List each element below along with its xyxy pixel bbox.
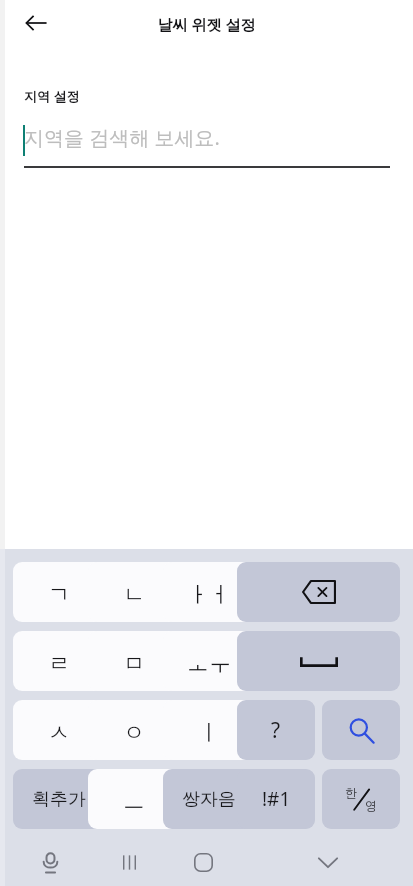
button[interactable]: 8: [88, 700, 180, 760]
staticText: ㄴ: [123, 581, 145, 609]
staticText: 한: [345, 785, 357, 800]
staticText: ㅗㅜ: [187, 650, 231, 678]
staticText: 지역을 검색해 보세요.: [24, 124, 220, 151]
staticText: 쌍자음: [182, 788, 236, 811]
staticText: ㅏㅓ: [187, 581, 231, 609]
staticText: 날씨 위젯 설정: [0, 14, 413, 34]
staticText: ㅁ: [123, 650, 145, 678]
button[interactable]: Recents: [95, 839, 163, 886]
button[interactable]: Voice input: [5, 839, 95, 886]
staticText: 지역 설정: [24, 87, 80, 105]
button[interactable]: 2: [88, 562, 180, 622]
staticText: 0: [165, 771, 172, 786]
button[interactable]: Backspace: [237, 562, 400, 622]
button[interactable]: Home: [163, 839, 243, 886]
button[interactable]: 6: [163, 631, 255, 691]
staticText: !#1: [262, 786, 291, 812]
staticText: 획추가: [32, 788, 86, 811]
staticText: ㄱ: [48, 581, 70, 609]
button[interactable]: 5: [88, 631, 180, 691]
button[interactable]: !#1: [237, 769, 315, 829]
staticText: ㅡ: [123, 788, 145, 816]
button[interactable]: 4: [13, 631, 105, 691]
staticText: ㅣ: [198, 719, 220, 747]
button[interactable]: Search: [322, 700, 400, 760]
staticText: 영: [365, 798, 377, 813]
button[interactable]: 7: [13, 700, 105, 760]
staticText: ㄹ: [48, 650, 70, 678]
button[interactable]: ?: [237, 700, 315, 760]
button[interactable]: Language: [322, 769, 400, 829]
button[interactable]: 지역을 검색해 보세요.: [0, 120, 413, 166]
button[interactable]: 3: [163, 562, 255, 622]
button[interactable]: Back: [19, 6, 53, 40]
button[interactable]: Hide keyboard: [243, 839, 413, 886]
button[interactable]: 획추가: [13, 769, 105, 829]
staticText: ㅇ: [123, 719, 145, 747]
staticText: ㅅ: [48, 719, 70, 747]
button[interactable]: 1: [13, 562, 105, 622]
button[interactable]: 0: [88, 769, 180, 829]
button[interactable]: 9: [163, 700, 255, 760]
button[interactable]: 쌍자음: [163, 769, 255, 829]
button[interactable]: Space: [237, 631, 400, 691]
staticText: ?: [271, 716, 281, 745]
